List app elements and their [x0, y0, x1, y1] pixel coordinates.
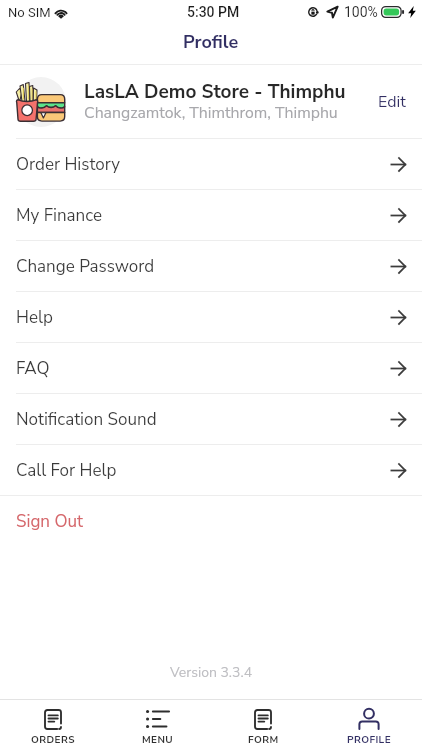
button[interactable]: My Finance: [0, 190, 422, 240]
button[interactable]: FORM: [210, 700, 316, 750]
staticText: FAQ: [16, 357, 50, 380]
staticText: My Finance: [16, 204, 102, 227]
staticText: ORDERS: [31, 733, 75, 747]
staticText: Changzamtok, Thimthrom, Thimphu: [84, 102, 338, 124]
button[interactable]: LasLA Demo Store - Thimphu: [0, 65, 422, 138]
staticText: Sign Out: [16, 510, 83, 533]
staticText: LasLA Demo Store - Thimphu: [84, 79, 346, 105]
button[interactable]: Help: [0, 292, 422, 342]
staticText: Call For Help: [16, 459, 117, 482]
button[interactable]: ORDERS: [0, 700, 105, 750]
staticText: 5:30 PM: [187, 4, 240, 20]
staticText: Notification Sound: [16, 408, 157, 431]
button[interactable]: PROFILE: [316, 700, 422, 750]
staticText: Help: [16, 306, 53, 329]
staticText: 100%: [344, 4, 378, 20]
button[interactable]: Order History: [0, 139, 422, 189]
staticText: Change Password: [16, 255, 155, 278]
staticText: PROFILE: [347, 733, 391, 747]
button[interactable]: Call For Help: [0, 445, 422, 495]
button[interactable]: Edit: [368, 81, 422, 123]
staticText: FORM: [248, 733, 279, 747]
staticText: Order History: [16, 153, 121, 176]
button[interactable]: Change Password: [0, 241, 422, 291]
button[interactable]: Sign Out: [0, 496, 422, 547]
staticText: Profile: [183, 30, 239, 55]
staticText: Version 3.3.4: [0, 663, 422, 682]
staticText: MENU: [142, 733, 174, 747]
staticText: No SIM: [8, 5, 51, 20]
button[interactable]: FAQ: [0, 343, 422, 393]
button[interactable]: Notification Sound: [0, 394, 422, 444]
staticText: Edit: [378, 91, 406, 113]
button[interactable]: MENU: [105, 700, 210, 750]
